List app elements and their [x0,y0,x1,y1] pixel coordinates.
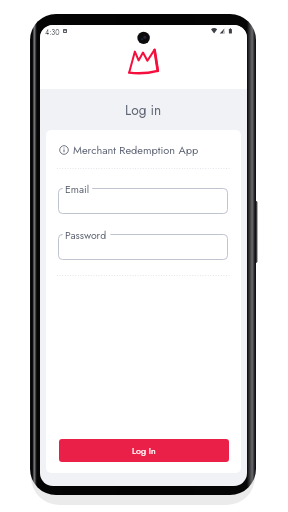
staticText: Log in [125,100,162,120]
button[interactable]: Email [58,188,228,214]
other: Info [59,145,69,155]
button[interactable]: Password [58,234,228,260]
staticText: Password [65,228,107,241]
staticText: Email [65,182,90,195]
button[interactable]: Log In [59,439,229,462]
staticText: Merchant Redemption App [73,142,199,157]
staticText: 4:30 [45,27,60,35]
staticText: Log In [132,444,156,457]
